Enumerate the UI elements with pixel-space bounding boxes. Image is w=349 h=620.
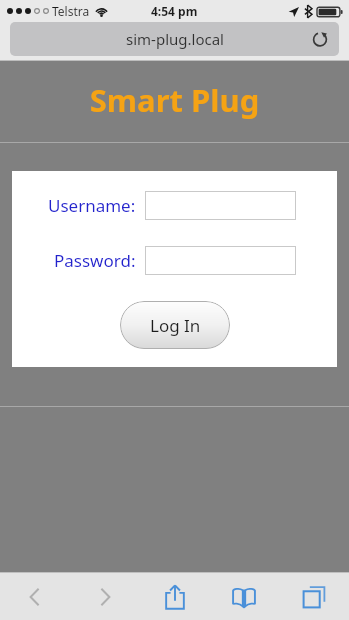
button[interactable]: Log In	[120, 301, 230, 349]
staticText: Password:	[54, 249, 136, 272]
button[interactable]: Reload	[309, 28, 331, 50]
button[interactable]: Forward	[77, 575, 133, 619]
button[interactable]: sim-plug.local	[10, 22, 339, 56]
staticText: Smart Plug	[0, 79, 349, 121]
staticText: Telstra	[52, 3, 90, 19]
button[interactable]: Share	[147, 575, 203, 619]
button[interactable]	[145, 246, 296, 275]
staticText: 4:54 pm	[151, 3, 198, 19]
button[interactable]: Bookmarks	[216, 575, 272, 619]
button[interactable]	[145, 191, 296, 220]
staticText: sim-plug.local	[126, 29, 224, 49]
button[interactable]: Tabs	[286, 575, 342, 619]
staticText: Log In	[150, 314, 201, 337]
staticText: Username:	[48, 194, 136, 217]
button[interactable]: Back	[7, 575, 63, 619]
